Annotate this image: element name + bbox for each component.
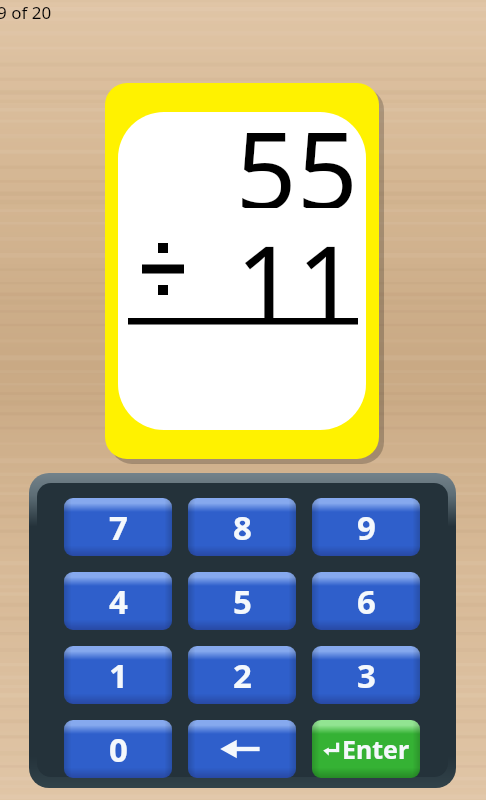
button[interactable]: 2 — [188, 646, 296, 704]
button[interactable]: 9 of 20 — [0, 1, 52, 24]
staticText: 4 — [109, 579, 128, 624]
button[interactable]: 5 — [188, 572, 296, 630]
button[interactable]: 3 — [312, 646, 420, 704]
staticText: 7 — [109, 505, 128, 550]
button[interactable]: 8 — [188, 498, 296, 556]
button[interactable]: 9 — [312, 498, 420, 556]
staticText: 11 — [235, 210, 358, 322]
button[interactable]: 7 — [64, 498, 172, 556]
button[interactable]: 6 — [312, 572, 420, 630]
staticText: 1 — [109, 653, 128, 698]
button[interactable]: 1 — [64, 646, 172, 704]
button[interactable]: Backspace — [188, 720, 296, 778]
button[interactable]: Enter — [312, 720, 420, 778]
button[interactable]: 55 — [105, 83, 379, 459]
staticText: 2 — [233, 653, 252, 698]
button[interactable]: 0 — [64, 720, 172, 778]
staticText: 3 — [357, 653, 376, 698]
staticText: 9 — [357, 505, 376, 550]
staticText: 9 of 20 — [0, 1, 52, 24]
button[interactable]: 4 — [64, 572, 172, 630]
staticText: 0 — [109, 727, 128, 772]
staticText: 8 — [233, 505, 252, 550]
staticText: 6 — [357, 579, 376, 624]
staticText: 55 — [235, 96, 358, 208]
staticText: Enter — [342, 732, 410, 766]
staticText: 5 — [233, 579, 252, 624]
